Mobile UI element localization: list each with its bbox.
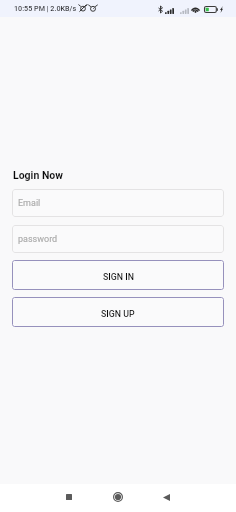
staticText: SIGN IN [103,272,134,282]
button[interactable]: password [12,225,224,253]
button[interactable]: SIGN IN [12,260,224,290]
button[interactable]: Back [152,484,180,512]
button[interactable]: Email [12,189,224,217]
staticText: SIGN UP [101,309,135,319]
button[interactable]: Home [104,484,132,512]
staticText: Email [18,198,41,209]
button[interactable]: Recent apps [55,484,83,512]
staticText: 10:55 PM | 2.0KB/s [14,4,77,12]
button[interactable]: SIGN UP [12,297,224,327]
staticText: password [18,234,58,245]
staticText: Login Now [13,169,63,181]
